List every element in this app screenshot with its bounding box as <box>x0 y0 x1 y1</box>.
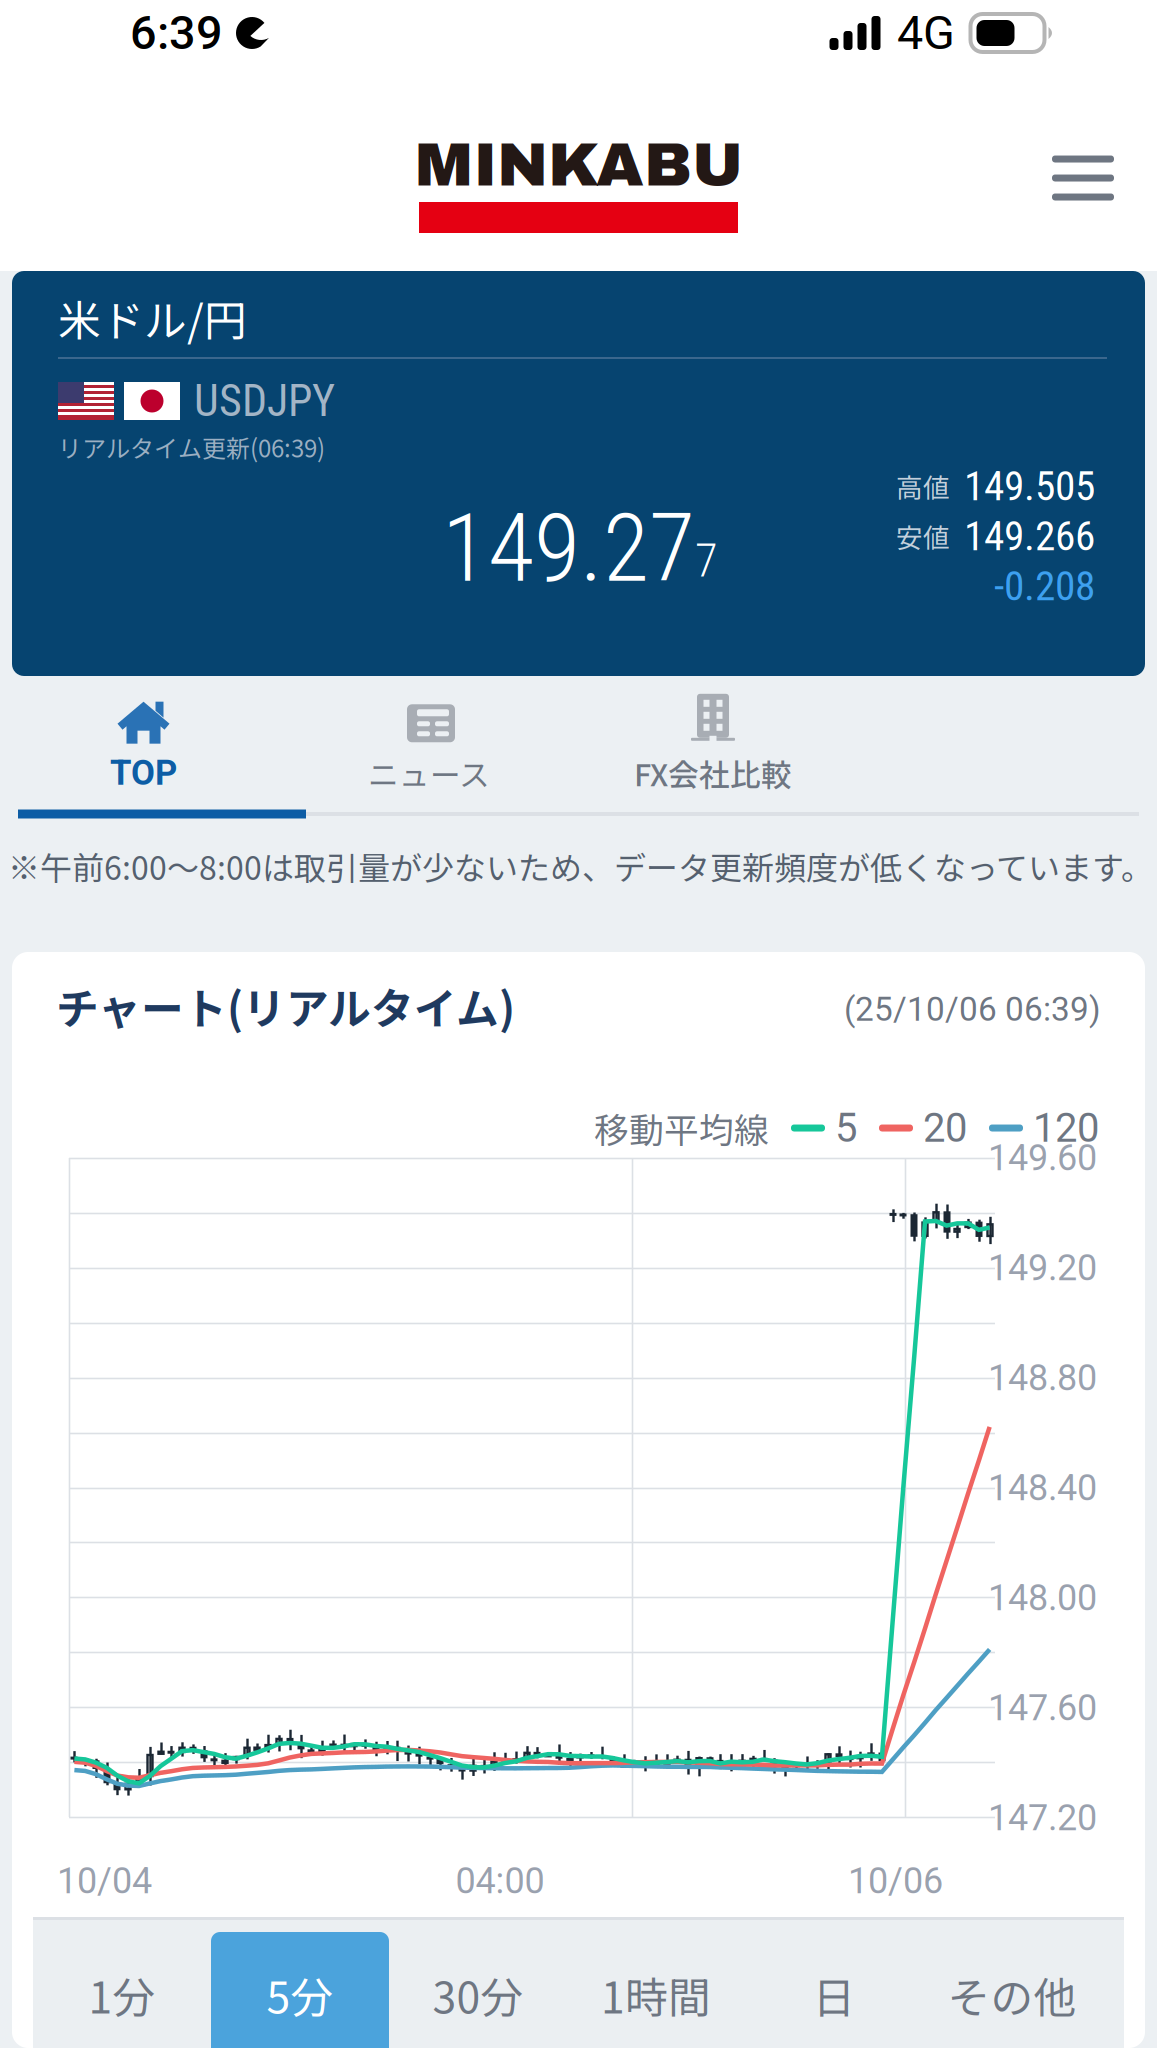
staticText: 10/04 <box>57 1860 152 1902</box>
staticText: 6:39 <box>130 6 223 60</box>
staticText: リアルタイム更新(06:39) <box>58 430 325 464</box>
button[interactable]: TOP <box>0 681 287 809</box>
staticText: 米ドル/円 <box>58 287 247 349</box>
staticText: ニュース <box>368 751 490 795</box>
button[interactable]: FX会社比較 <box>571 681 855 809</box>
staticText: MINKABU <box>414 132 743 198</box>
button[interactable]: Menu <box>1023 118 1143 238</box>
staticText: 147.20 <box>988 1797 1097 1839</box>
button[interactable]: ニュース <box>287 681 571 809</box>
staticText: 149.27 <box>442 493 695 604</box>
staticText: (25/10/06 06:39) <box>844 990 1101 1029</box>
staticText: 1分 <box>88 1964 155 2026</box>
staticText: 147.60 <box>988 1687 1097 1729</box>
staticText: 20 <box>923 1105 967 1151</box>
staticText: 7 <box>695 533 718 588</box>
staticText: -0.208 <box>994 562 1095 610</box>
staticText: 149.266 <box>964 512 1095 560</box>
staticText: 149.505 <box>964 462 1095 510</box>
button[interactable]: 日 <box>745 1932 923 2048</box>
staticText: 5分 <box>266 1964 333 2026</box>
staticText: 4G <box>897 6 955 60</box>
staticText: 安値 <box>896 517 950 555</box>
staticText: 149.20 <box>988 1247 1097 1289</box>
staticText: ※午前6:00〜8:00は取引量が少ないため、データ更新頻度が低くなっています。 <box>8 843 1153 889</box>
button[interactable]: その他 <box>923 1932 1101 2048</box>
staticText: チャート(リアルタイム) <box>56 975 515 1037</box>
button[interactable]: 1時間 <box>567 1932 745 2048</box>
staticText: 30分 <box>432 1964 523 2026</box>
button[interactable]: 5分 <box>211 1932 389 2048</box>
staticText: 04:00 <box>455 1860 544 1902</box>
staticText: 148.40 <box>988 1467 1097 1509</box>
staticText: その他 <box>947 1964 1076 2026</box>
button[interactable]: 30分 <box>389 1932 567 2048</box>
staticText: 日 <box>812 1964 855 2026</box>
staticText: 120 <box>1033 1105 1099 1151</box>
staticText: 1時間 <box>601 1964 711 2026</box>
staticText: 移動平均線 <box>594 1103 769 1153</box>
staticText: 10/06 <box>848 1860 943 1902</box>
staticText: 148.00 <box>988 1577 1097 1619</box>
button[interactable]: 1分 <box>33 1932 211 2048</box>
staticText: 高値 <box>896 467 950 505</box>
staticText: 5 <box>835 1105 857 1151</box>
staticText: 149.60 <box>988 1137 1097 1179</box>
staticText: FX会社比較 <box>634 751 792 795</box>
staticText: TOP <box>110 753 177 793</box>
staticText: USDJPY <box>194 375 335 427</box>
staticText: 148.80 <box>988 1357 1097 1399</box>
